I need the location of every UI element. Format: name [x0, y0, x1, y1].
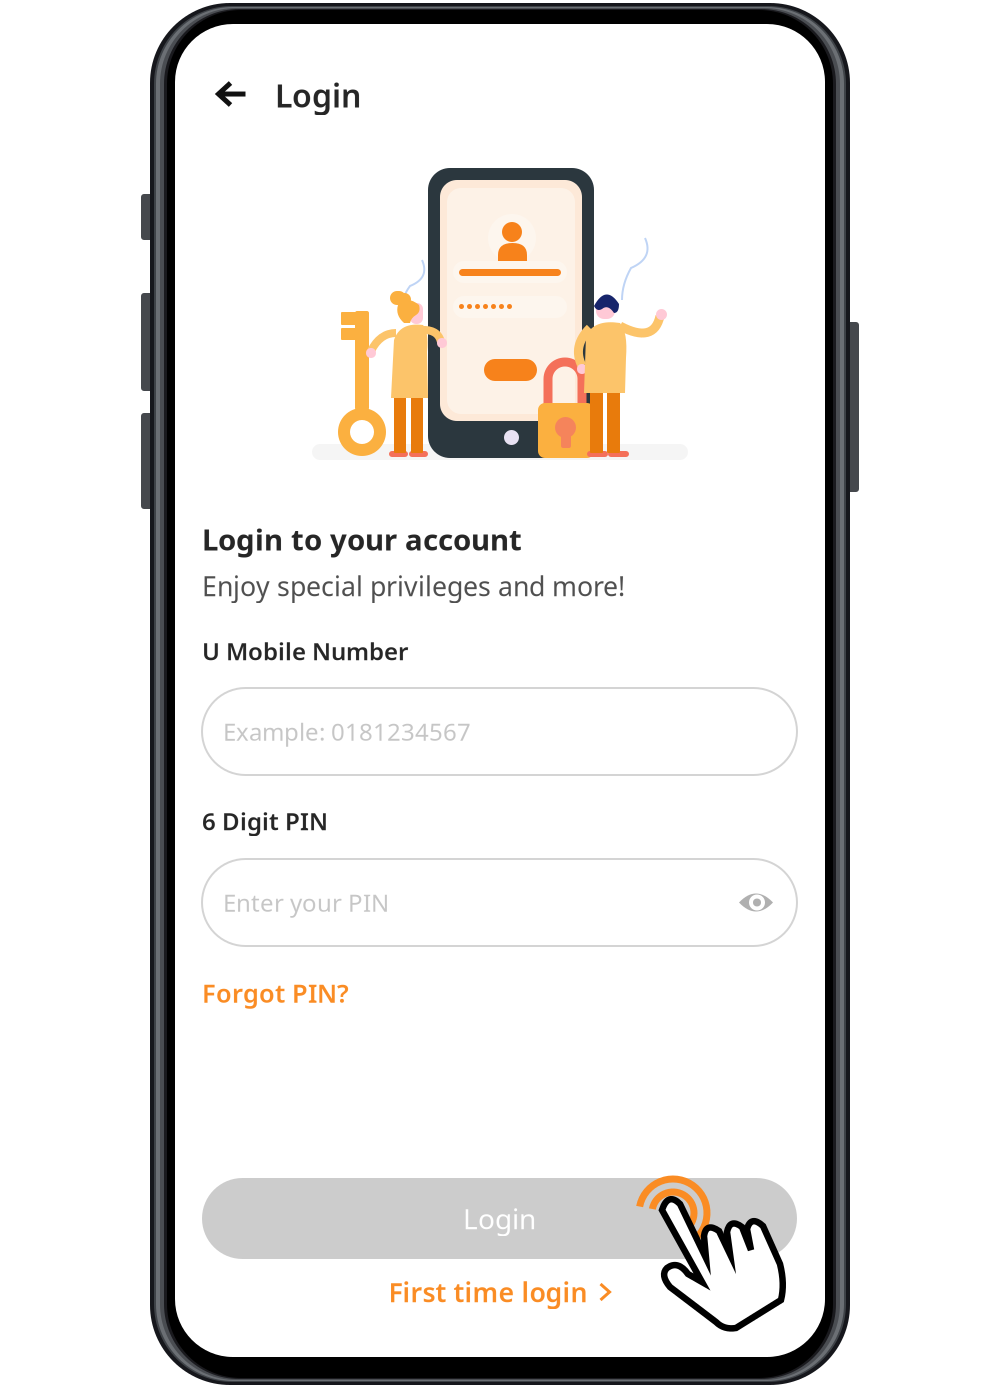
staticText: Login: [275, 74, 361, 116]
staticText: Login: [463, 1200, 536, 1237]
staticText: Login to your account: [202, 519, 522, 558]
button[interactable]: Example: 0181234567: [202, 688, 797, 775]
staticText: 6 Digit PIN: [202, 805, 328, 837]
button[interactable]: Back: [201, 66, 263, 122]
button[interactable]: Enter your PIN: [202, 859, 797, 946]
staticText: First time login: [388, 1274, 587, 1310]
staticText: U Mobile Number: [202, 635, 408, 667]
button[interactable]: Show PIN: [734, 885, 778, 919]
staticText: Enter your PIN: [223, 887, 389, 918]
staticText: Forgot PIN?: [202, 976, 349, 1010]
button[interactable]: First time login: [350, 1267, 650, 1317]
staticText: Example: 0181234567: [223, 716, 471, 747]
staticText: Enjoy special privileges and more!: [202, 568, 625, 604]
button[interactable]: Login: [202, 1178, 797, 1259]
button[interactable]: Forgot PIN?: [202, 973, 502, 1013]
